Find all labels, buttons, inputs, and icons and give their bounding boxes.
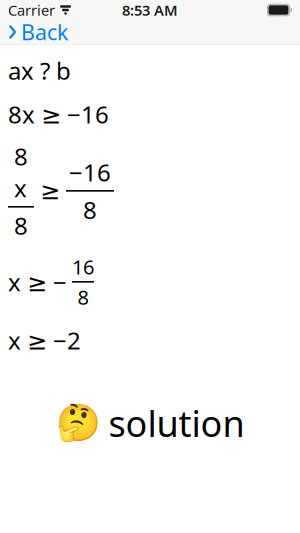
staticText: Back <box>21 18 68 46</box>
staticText: 16 <box>72 253 94 280</box>
staticText: 8x ≥ −16 <box>8 98 109 130</box>
staticText: x ≥ −2 <box>8 324 81 356</box>
staticText: −16 <box>69 156 111 188</box>
staticText: ≥ <box>40 177 60 204</box>
staticText: 8 <box>77 284 88 310</box>
button[interactable]: Back <box>0 20 78 44</box>
staticText: x ≥ − <box>8 266 67 298</box>
staticText: Carrier <box>8 0 55 20</box>
staticText: 🤔 <box>55 402 100 443</box>
staticText: ax ? b <box>8 54 71 86</box>
staticText: 8 <box>83 194 97 226</box>
staticText: solution <box>108 399 244 447</box>
staticText: 8 <box>14 210 28 241</box>
staticText: 8:53 AM <box>122 0 178 20</box>
staticText: 8x <box>14 140 28 204</box>
